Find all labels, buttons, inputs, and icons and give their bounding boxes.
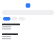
button[interactable]: Compose bbox=[26, 3, 30, 8]
button[interactable] bbox=[11, 17, 17, 21]
button[interactable] bbox=[18, 17, 25, 21]
button[interactable] bbox=[3, 17, 10, 21]
